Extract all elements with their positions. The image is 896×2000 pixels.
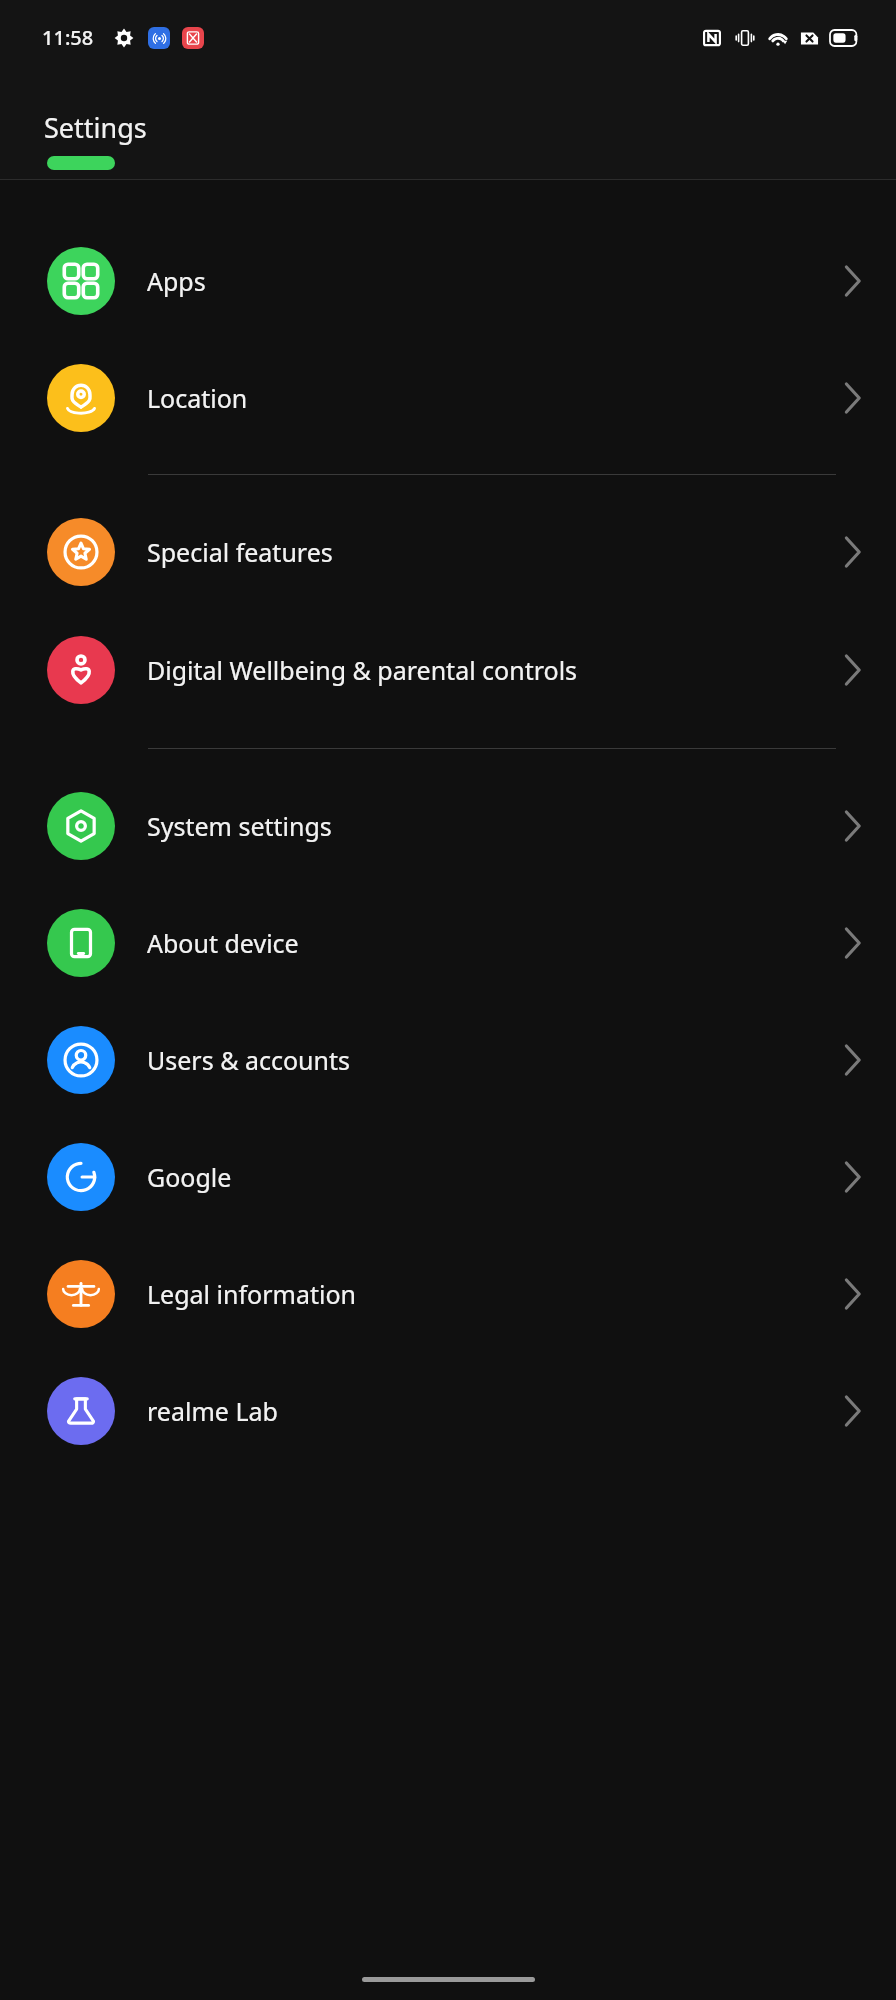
button[interactable]: System settings bbox=[0, 767, 896, 884]
staticText: Digital Wellbeing & parental controls bbox=[147, 653, 820, 687]
staticText: 11:58 bbox=[42, 24, 94, 51]
staticText: Apps bbox=[147, 264, 820, 298]
staticText: Special features bbox=[147, 535, 820, 569]
button[interactable]: Digital Wellbeing & parental controls bbox=[0, 610, 896, 730]
button[interactable]: Location bbox=[0, 339, 896, 456]
staticText: About device bbox=[147, 926, 820, 960]
button[interactable]: Google bbox=[0, 1118, 896, 1235]
staticText: Users & accounts bbox=[147, 1043, 820, 1077]
staticText: System settings bbox=[147, 809, 820, 843]
staticText: realme Lab bbox=[147, 1394, 820, 1428]
button[interactable]: realme Lab bbox=[0, 1352, 896, 1469]
button[interactable]: Legal information bbox=[0, 1235, 896, 1352]
button[interactable]: Apps bbox=[0, 222, 896, 339]
staticText: Google bbox=[147, 1160, 820, 1194]
staticText: Settings bbox=[44, 109, 147, 146]
button[interactable]: Special features bbox=[0, 493, 896, 610]
button[interactable]: Users & accounts bbox=[0, 1001, 896, 1118]
button[interactable]: About device bbox=[0, 884, 896, 1001]
staticText: Legal information bbox=[147, 1277, 820, 1311]
staticText: Location bbox=[147, 381, 820, 415]
